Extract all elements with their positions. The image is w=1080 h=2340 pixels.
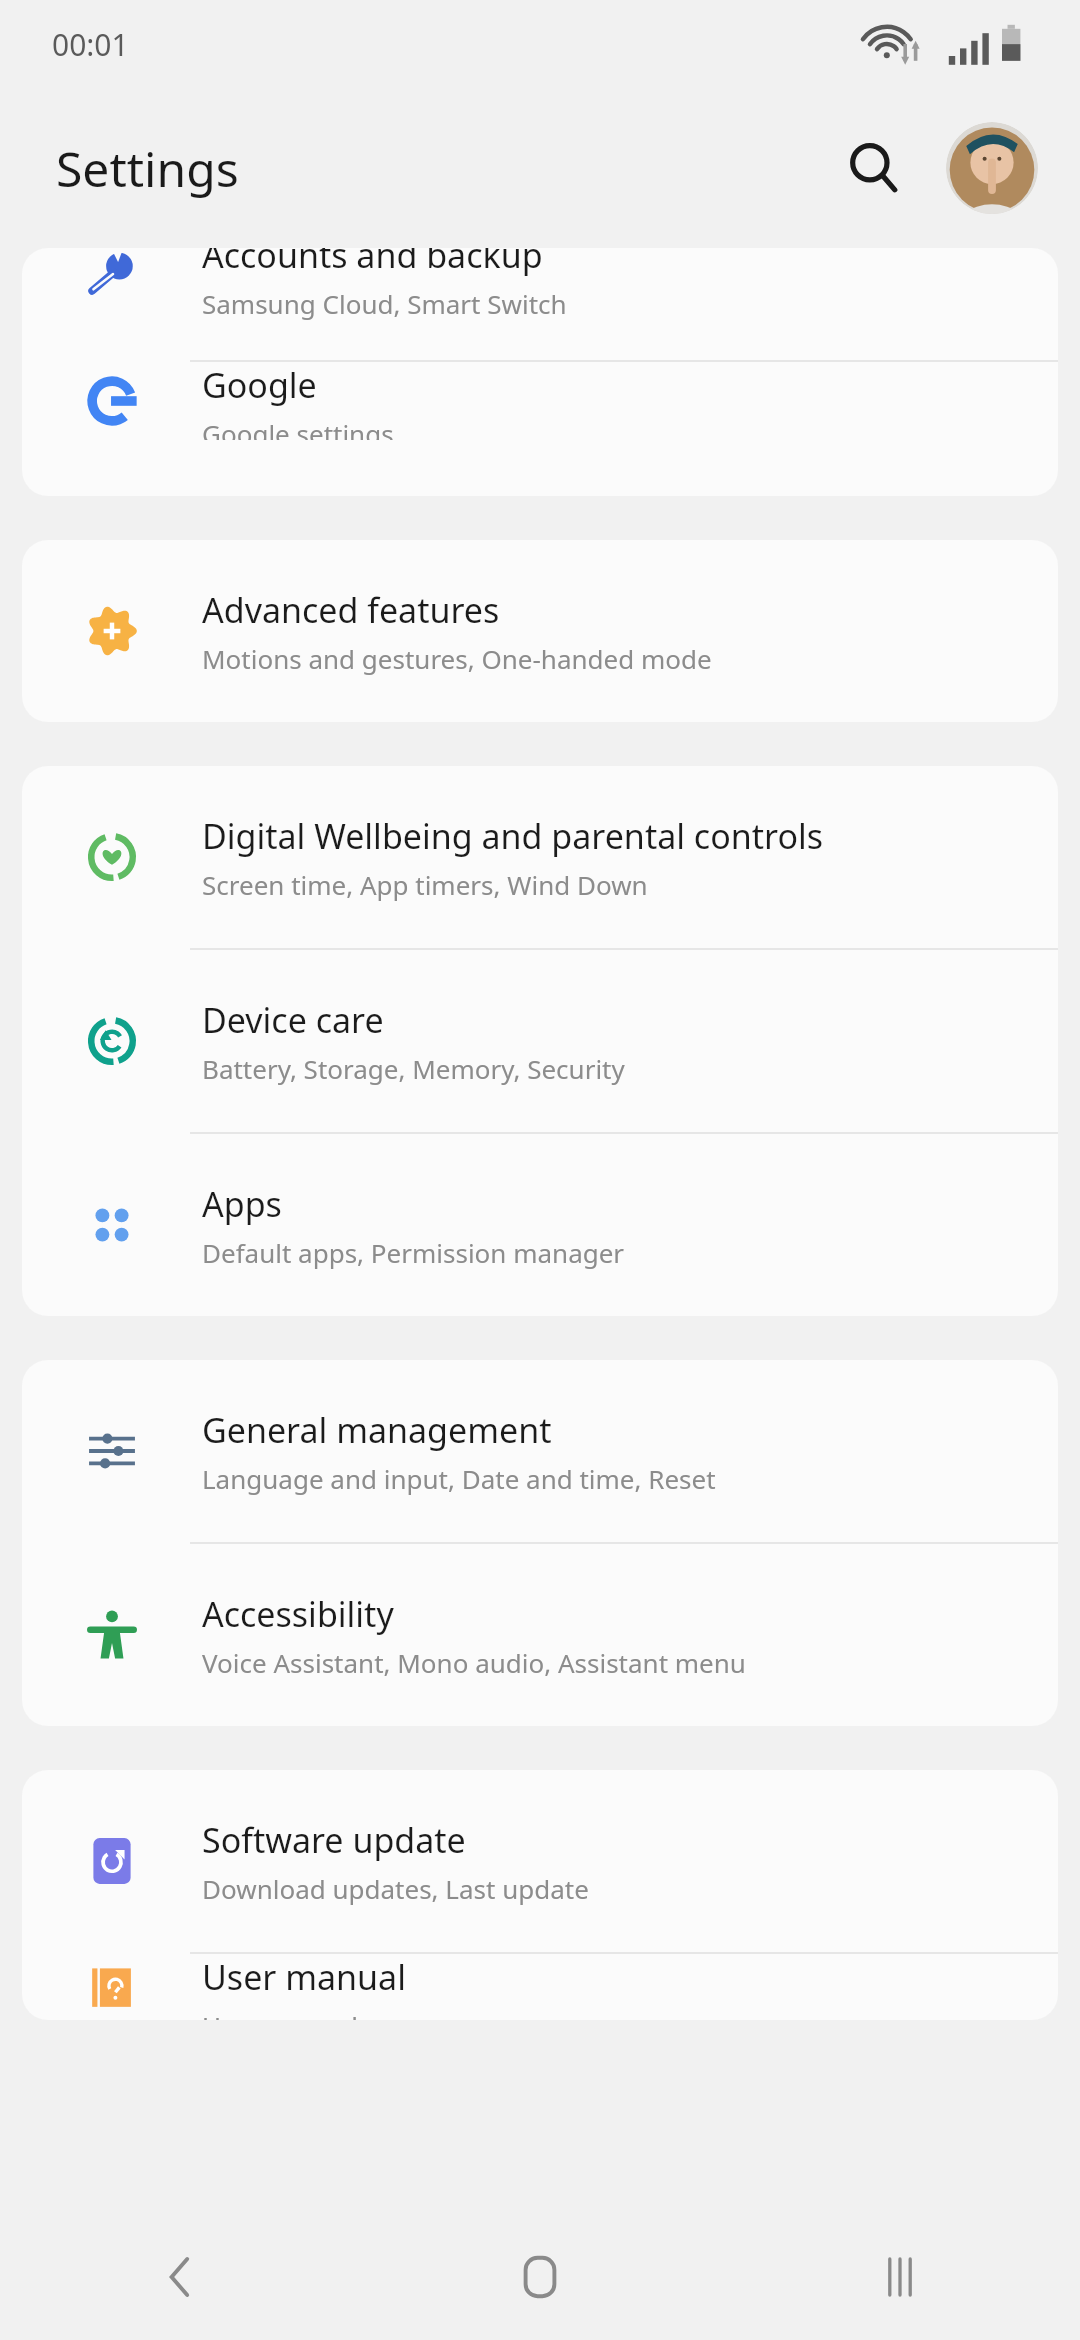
staticText: Digital Wellbeing and parental controls <box>202 813 824 859</box>
staticText: Google settings <box>202 416 394 440</box>
button[interactable]: Google <box>22 362 1058 440</box>
staticText: General management <box>202 1407 552 1453</box>
button[interactable]: Recents <box>720 2213 1080 2340</box>
staticText: Apps <box>202 1181 282 1227</box>
staticText: Motions and gestures, One-handed mode <box>202 641 712 676</box>
button[interactable]: General management <box>22 1360 1058 1544</box>
button[interactable]: Accessibility <box>22 1544 1058 1726</box>
button[interactable]: Back <box>0 2213 360 2340</box>
staticText: Settings <box>56 136 239 201</box>
staticText: User manual <box>202 1954 406 2000</box>
button[interactable]: Profile <box>944 120 1040 216</box>
button[interactable]: Digital Wellbeing and parental controls <box>22 766 1058 950</box>
button[interactable]: Search <box>826 120 922 216</box>
staticText: Advanced features <box>202 587 500 633</box>
staticText: Software update <box>202 1817 466 1863</box>
button[interactable]: Accounts and backup <box>22 248 1058 362</box>
staticText: Accessibility <box>202 1591 394 1637</box>
button[interactable]: Software update <box>22 1770 1058 1954</box>
staticText: Battery, Storage, Memory, Security <box>202 1051 625 1086</box>
staticText: Voice Assistant, Mono audio, Assistant m… <box>202 1645 746 1680</box>
staticText: User manual <box>202 2008 358 2020</box>
staticText: Samsung Cloud, Smart Switch <box>202 286 567 321</box>
staticText: 00:01 <box>52 24 129 65</box>
staticText: Device care <box>202 997 384 1043</box>
button[interactable]: Home <box>360 2213 720 2340</box>
staticText: Screen time, App timers, Wind Down <box>202 867 648 902</box>
staticText: Accounts and backup <box>202 248 543 278</box>
button[interactable]: Device care <box>22 950 1058 1134</box>
button[interactable]: Advanced features <box>22 540 1058 722</box>
staticText: Language and input, Date and time, Reset <box>202 1461 716 1496</box>
button[interactable]: User manual <box>22 1954 1058 2020</box>
staticText: Google <box>202 362 317 408</box>
staticText: Default apps, Permission manager <box>202 1235 625 1270</box>
button[interactable]: Apps <box>22 1134 1058 1316</box>
staticText: Download updates, Last update <box>202 1871 589 1906</box>
